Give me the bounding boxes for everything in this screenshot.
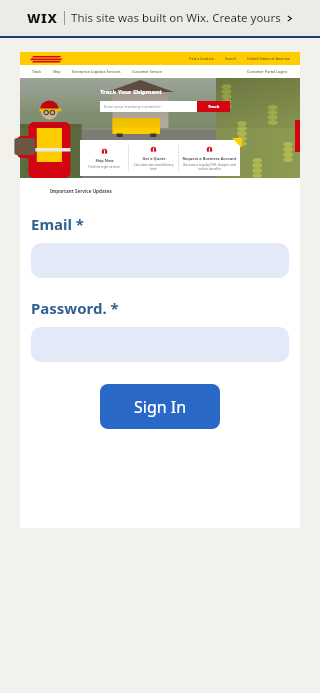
staticText: Calculate rate and delivery time xyxy=(132,163,175,171)
button[interactable]: Important Service Updates xyxy=(50,188,112,194)
staticText: United States of America xyxy=(247,56,290,61)
button[interactable]: Customer Portal Logins xyxy=(247,69,288,74)
staticText: WIX xyxy=(27,9,58,27)
staticText: Customer Portal Logins xyxy=(247,69,288,74)
button[interactable]: Ship xyxy=(53,69,61,74)
button[interactable]: Enterprise Logistics Services xyxy=(72,69,121,74)
staticText: Track Your Shipment xyxy=(100,88,162,96)
staticText: Get a Quote xyxy=(142,156,166,161)
button[interactable]: United States of America xyxy=(247,56,290,61)
staticText: Email * xyxy=(31,214,84,234)
button[interactable]: Enter your tracking number(s) xyxy=(100,101,197,112)
button[interactable]: DHL home xyxy=(30,54,64,63)
staticText: Request a Business Account xyxy=(182,156,237,161)
button[interactable]: Request a Business Account xyxy=(179,140,240,176)
staticText: Ship Now xyxy=(95,158,114,163)
button[interactable]: Search xyxy=(225,56,237,61)
staticText: Become a regular DHL shipper and unlock … xyxy=(182,163,237,171)
button[interactable]: WIX xyxy=(0,0,320,36)
button[interactable]: Track xyxy=(32,69,42,74)
staticText: Find the right service xyxy=(88,165,120,169)
staticText: Track xyxy=(32,69,42,74)
staticText: Password. * xyxy=(31,298,119,318)
staticText: Ship xyxy=(53,69,61,74)
staticText: Track xyxy=(208,104,220,110)
button[interactable]: Ship Now xyxy=(80,140,128,176)
button[interactable]: Track xyxy=(197,101,230,112)
staticText: Enter your tracking number(s) xyxy=(104,104,161,109)
staticText: Find a location xyxy=(189,56,215,61)
staticText: Enterprise Logistics Services xyxy=(72,69,121,74)
staticText: Sign In xyxy=(134,396,187,418)
staticText: This site was built on Wix. Create yours xyxy=(71,10,281,26)
button[interactable]: Customer Service xyxy=(132,69,163,74)
button[interactable]: Find a location xyxy=(189,56,215,61)
staticText: Customer Service xyxy=(132,69,163,74)
staticText: Search xyxy=(225,56,237,61)
button[interactable]: Sign In xyxy=(100,384,220,429)
button[interactable]: Get a Quote xyxy=(129,140,178,176)
